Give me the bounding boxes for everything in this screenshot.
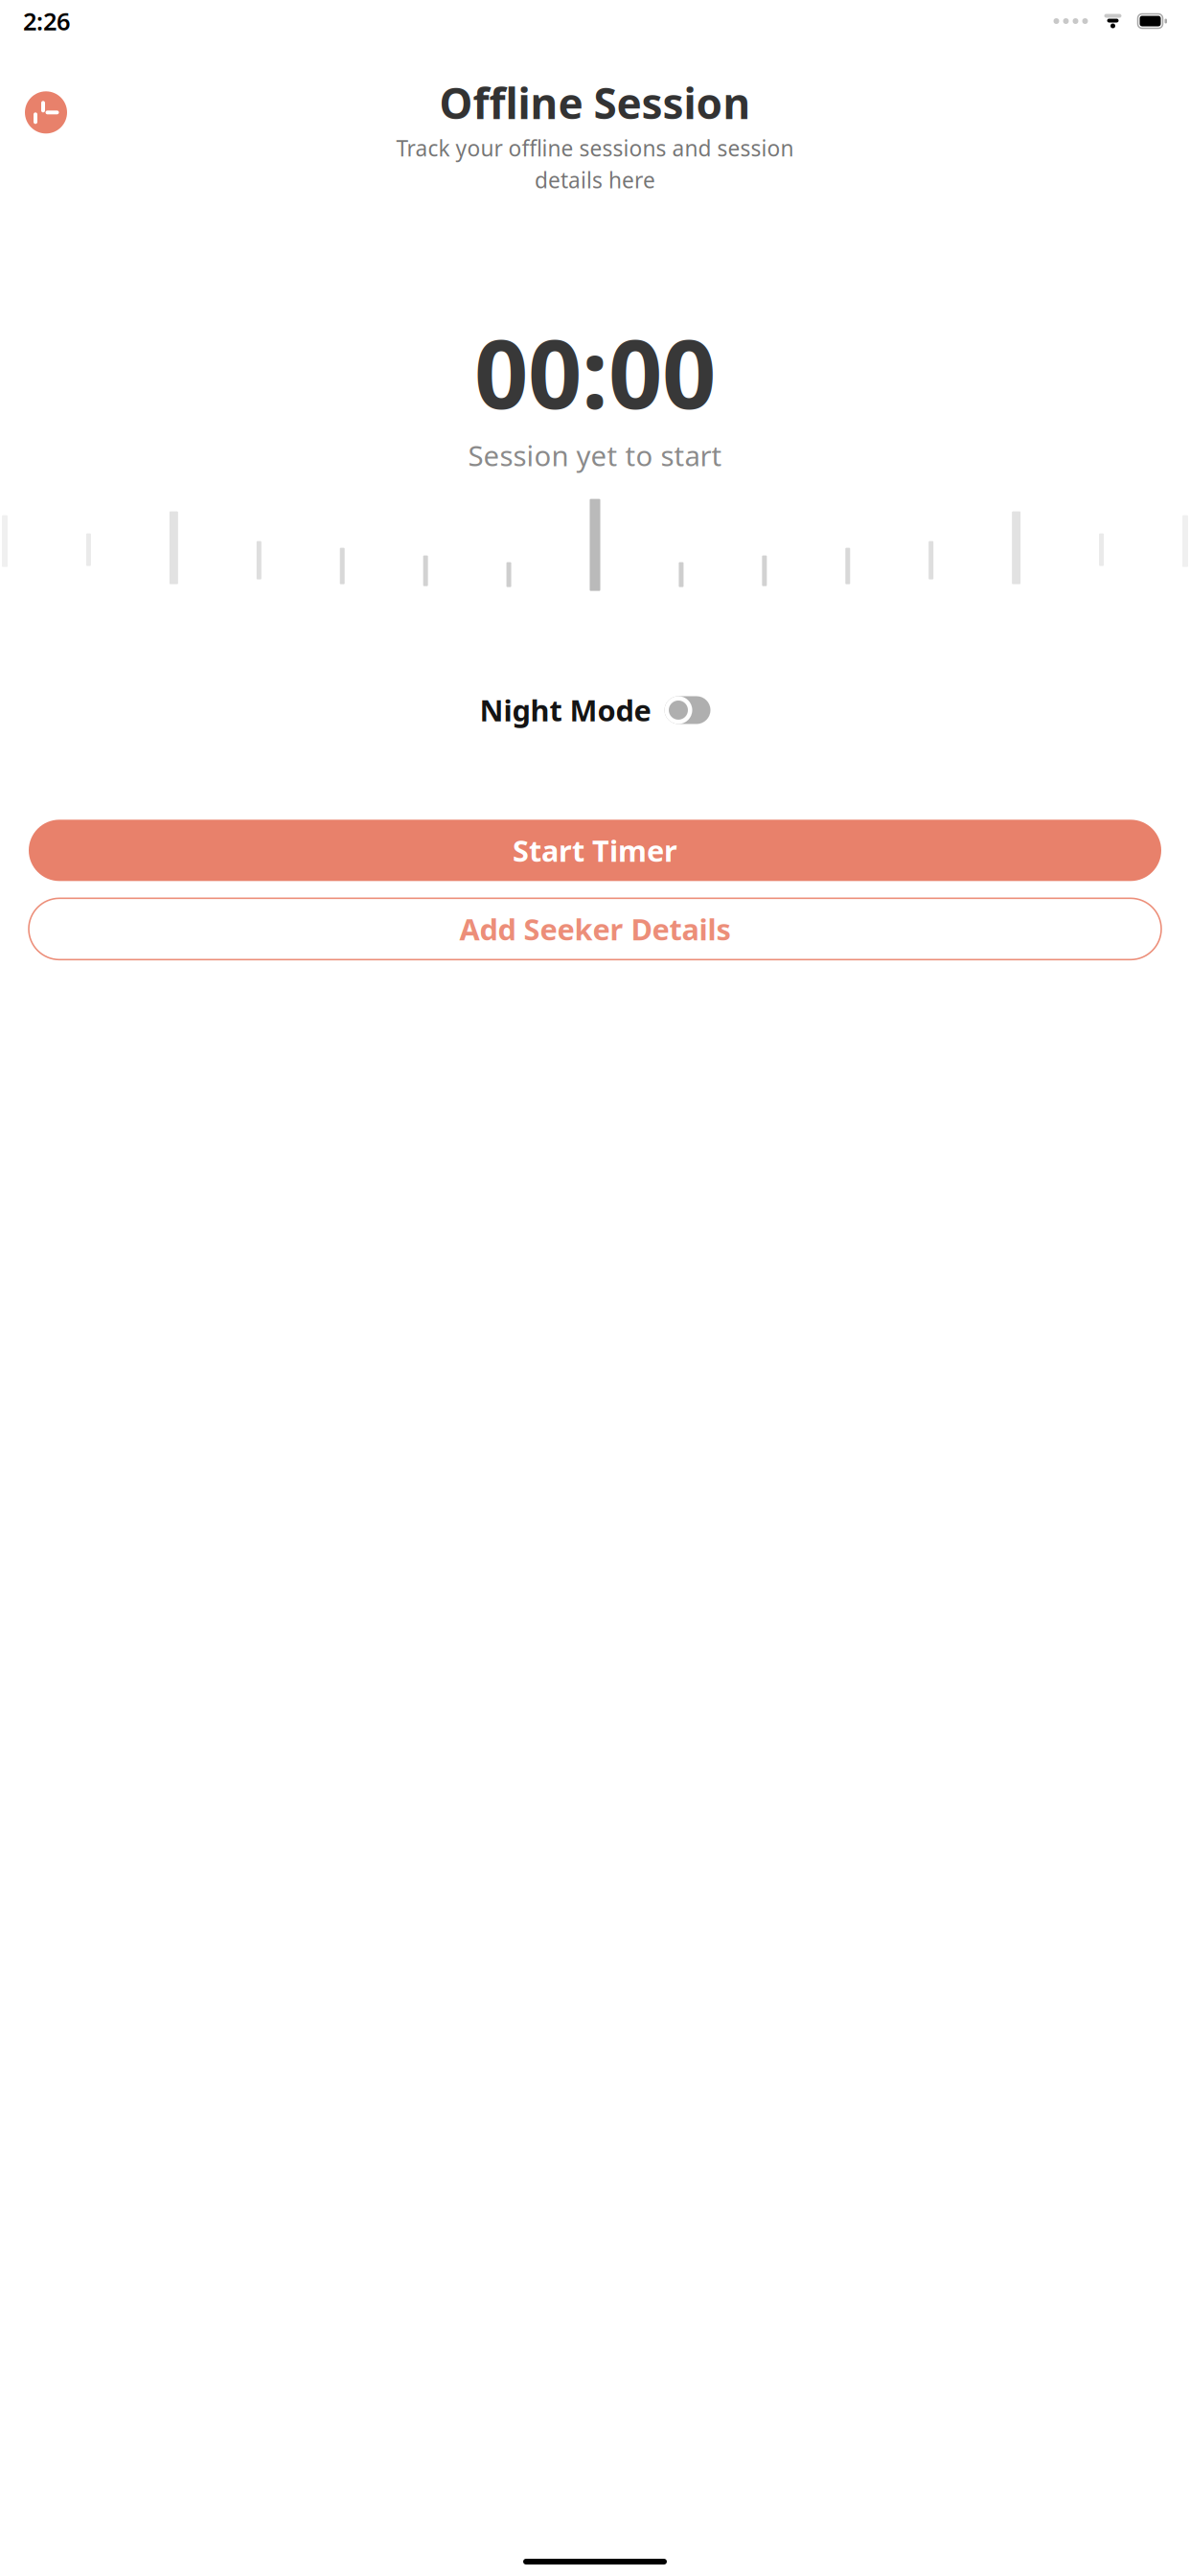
- button[interactable]: Add Seeker Details: [29, 898, 1161, 960]
- button[interactable]: Start Timer: [29, 820, 1161, 881]
- staticText: Start Timer: [513, 831, 677, 870]
- staticText: 2:26: [23, 5, 70, 37]
- staticText: Session yet to start: [468, 437, 722, 474]
- button[interactable]: Night Mode: [474, 683, 716, 737]
- staticText: 00:00: [474, 309, 716, 435]
- staticText: details here: [535, 165, 655, 194]
- staticText: Track your offline sessions and session: [396, 134, 794, 162]
- staticText: Add Seeker Details: [459, 909, 731, 948]
- staticText: Offline Session: [439, 75, 751, 131]
- button[interactable]: Back: [25, 91, 67, 133]
- staticText: Night Mode: [480, 691, 651, 730]
